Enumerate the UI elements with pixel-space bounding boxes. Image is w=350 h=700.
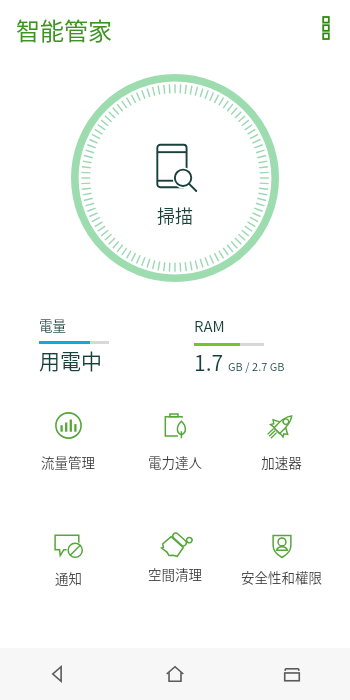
- button[interactable]: Recents: [233, 648, 350, 700]
- button[interactable]: More options: [314, 16, 338, 40]
- staticText: 流量管理: [41, 452, 95, 472]
- button[interactable]: 空間清理: [121, 529, 228, 587]
- button[interactable]: Back: [0, 648, 116, 700]
- button[interactable]: Scan: [67, 70, 283, 286]
- staticText: 電力達人: [148, 452, 202, 472]
- button[interactable]: 安全性和權限: [228, 529, 335, 590]
- staticText: GB / 2.7 GB: [228, 358, 285, 374]
- staticText: 1.7: [194, 347, 224, 377]
- button[interactable]: 通知: [15, 529, 121, 591]
- staticText: 加速器: [261, 452, 302, 472]
- staticText: 空間清理: [148, 564, 202, 584]
- button[interactable]: RAM: [194, 315, 330, 377]
- staticText: 掃描: [157, 202, 193, 228]
- staticText: 安全性和權限: [241, 567, 322, 587]
- staticText: 通知: [55, 568, 82, 588]
- staticText: 電量: [39, 315, 66, 335]
- button[interactable]: 流量管理: [15, 410, 121, 475]
- staticText: 智能管家: [16, 12, 112, 47]
- staticText: 用電中: [39, 345, 102, 375]
- button[interactable]: Home: [116, 648, 233, 700]
- button[interactable]: 電力達人: [121, 410, 228, 475]
- button[interactable]: 電量: [39, 315, 194, 375]
- staticText: RAM: [194, 315, 225, 337]
- button[interactable]: 加速器: [228, 410, 335, 475]
